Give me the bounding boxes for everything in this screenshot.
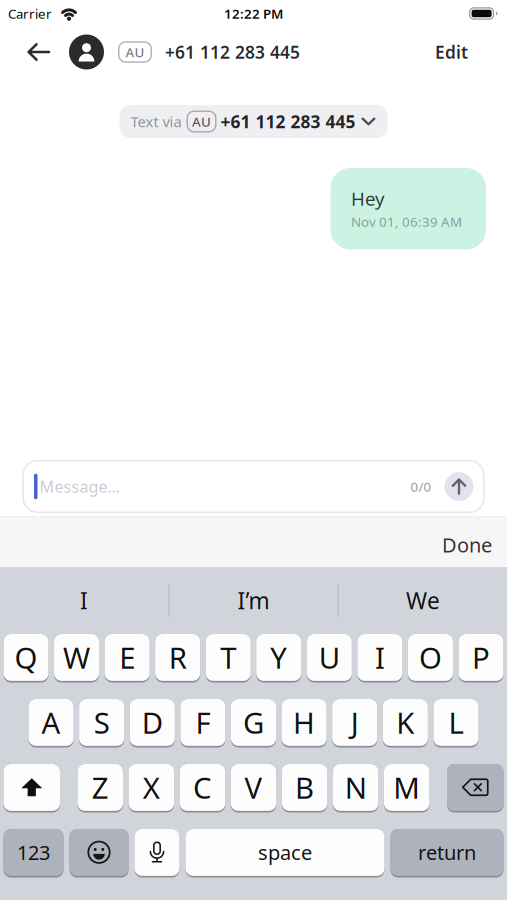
button[interactable]: O — [408, 634, 453, 682]
button[interactable]: Send — [431, 472, 484, 501]
staticText: O — [419, 638, 442, 677]
staticText: +61 112 283 445 — [220, 110, 355, 133]
staticText: Message... — [39, 476, 119, 497]
button[interactable]: Dictate — [134, 829, 179, 877]
staticText: Nov 01, 06:39 AM — [351, 213, 462, 230]
button[interactable]: Back — [0, 43, 69, 60]
button[interactable]: Numbers — [3, 829, 63, 877]
staticText: 0/0 — [410, 478, 431, 495]
button[interactable]: Y — [256, 634, 301, 682]
staticText: We — [406, 585, 440, 615]
button[interactable]: W — [54, 634, 99, 682]
button[interactable]: T — [206, 634, 251, 682]
staticText: I — [80, 585, 88, 615]
staticText: Q — [14, 638, 37, 677]
button[interactable]: N — [333, 764, 378, 812]
staticText: B — [295, 768, 314, 807]
button[interactable]: space — [185, 829, 384, 877]
button[interactable]: S — [79, 699, 124, 747]
staticText: L — [448, 703, 463, 742]
button[interactable]: Edit — [435, 40, 507, 63]
button[interactable]: B — [282, 764, 327, 812]
staticText: F — [195, 703, 210, 742]
button[interactable]: I — [0, 585, 168, 615]
staticText: R — [169, 638, 187, 677]
button[interactable]: We — [339, 585, 507, 615]
button[interactable]: R — [155, 634, 200, 682]
button[interactable]: C — [180, 764, 225, 812]
staticText: Z — [92, 768, 109, 807]
button[interactable]: V — [231, 764, 276, 812]
button[interactable]: Q — [3, 634, 48, 682]
button[interactable]: E — [105, 634, 150, 682]
staticText: G — [243, 703, 264, 742]
staticText: P — [472, 638, 490, 677]
staticText: J — [351, 703, 359, 742]
button[interactable]: J — [332, 699, 377, 747]
staticText: V — [244, 768, 262, 807]
button[interactable]: Emoji — [69, 829, 128, 877]
button[interactable]: L — [433, 699, 478, 747]
staticText: AU — [192, 113, 211, 130]
staticText: D — [142, 703, 163, 742]
button[interactable]: Delete — [447, 764, 503, 812]
button[interactable]: I — [357, 634, 402, 682]
button[interactable]: Contact — [69, 34, 104, 69]
button[interactable]: I’m — [169, 585, 338, 615]
staticText: S — [94, 703, 110, 742]
staticText: Carrier — [8, 5, 52, 22]
staticText: Y — [270, 638, 287, 677]
button[interactable]: G — [231, 699, 276, 747]
staticText: +61 112 283 445 — [165, 40, 300, 63]
staticText: U — [319, 638, 340, 677]
staticText: I’m — [237, 585, 269, 615]
button[interactable]: Z — [77, 764, 123, 812]
button[interactable]: F — [180, 699, 225, 747]
staticText: C — [193, 768, 212, 807]
staticText: M — [393, 768, 420, 807]
button[interactable]: U — [307, 634, 352, 682]
staticText: Hey — [351, 186, 385, 211]
staticText: E — [119, 638, 135, 677]
staticText: return — [418, 839, 476, 866]
staticText: X — [143, 768, 160, 807]
button[interactable]: H — [282, 699, 327, 747]
staticText: W — [63, 638, 90, 677]
button[interactable]: M — [384, 764, 429, 812]
button[interactable]: Shift — [3, 764, 60, 812]
staticText: T — [220, 638, 236, 677]
staticText: space — [258, 839, 312, 866]
staticText: Edit — [435, 40, 468, 63]
button[interactable]: Text via — [119, 105, 387, 138]
staticText: I — [375, 638, 385, 677]
staticText: 12:22 PM — [224, 5, 283, 22]
staticText: Done — [442, 531, 492, 558]
staticText: A — [42, 703, 61, 742]
staticText: K — [396, 703, 414, 742]
button[interactable]: return — [390, 829, 503, 877]
button[interactable]: K — [383, 699, 428, 747]
staticText: N — [345, 768, 367, 807]
staticText: H — [293, 703, 315, 742]
button[interactable]: X — [129, 764, 174, 812]
button[interactable]: Done — [442, 526, 507, 558]
staticText: Text via — [130, 112, 181, 131]
staticText: 123 — [17, 839, 50, 866]
button[interactable]: D — [130, 699, 175, 747]
button[interactable]: P — [458, 634, 503, 682]
button[interactable]: A — [28, 699, 74, 747]
staticText: AU — [125, 43, 144, 61]
